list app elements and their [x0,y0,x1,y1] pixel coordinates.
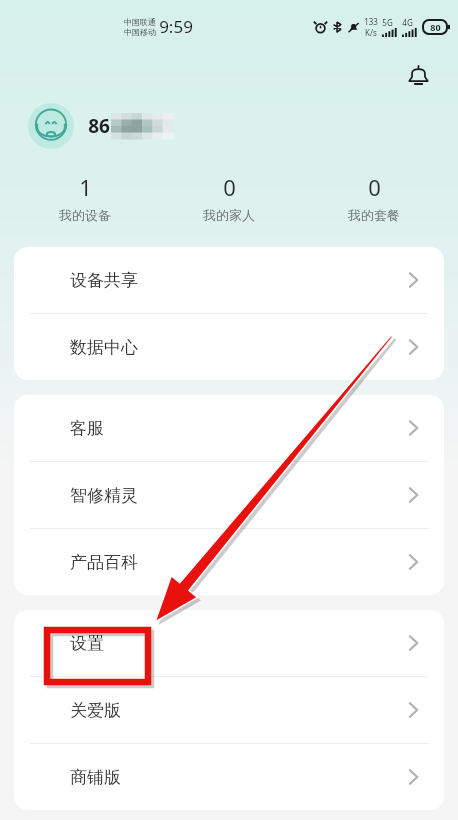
button[interactable]: 设备共享 [14,247,444,313]
button[interactable]: 商铺版 [14,744,444,810]
staticText: 我的家人 [203,207,255,223]
button[interactable]: Notifications [398,55,438,95]
staticText: 86 [88,113,110,139]
staticText: 我的设备 [59,207,111,223]
staticText: 5G [382,17,393,28]
staticText: 0 [223,172,236,202]
staticText: 智修精灵 [70,485,138,506]
button[interactable]: 关爱版 [14,677,444,743]
staticText: 80 [430,21,441,33]
button[interactable]: 数据中心 [14,314,444,380]
staticText: 133 [364,16,378,27]
button[interactable]: 客服 [14,395,444,461]
staticText: 设备共享 [70,270,138,291]
staticText: 客服 [70,418,104,439]
button[interactable]: 86 [28,98,458,154]
staticText: 0 [368,172,381,202]
staticText: 我的套餐 [348,207,400,223]
staticText: 9:59 [159,15,193,38]
button[interactable]: 0 [314,170,434,225]
staticText: 产品百科 [70,552,138,573]
button[interactable]: 1 [25,170,145,225]
staticText: 数据中心 [70,337,138,358]
staticText: 中国联通 [124,17,156,27]
button[interactable]: 设置 [14,610,444,676]
staticText: 4G [402,17,413,28]
staticText: 1 [79,172,92,202]
staticText: 设置 [70,633,104,654]
button[interactable]: 产品百科 [14,529,444,595]
staticText: 关爱版 [70,700,121,721]
button[interactable]: 0 [169,170,289,225]
staticText: 中国移动 [124,27,156,37]
staticText: 商铺版 [70,767,121,788]
staticText: K/s [365,27,377,38]
button[interactable]: 智修精灵 [14,462,444,528]
